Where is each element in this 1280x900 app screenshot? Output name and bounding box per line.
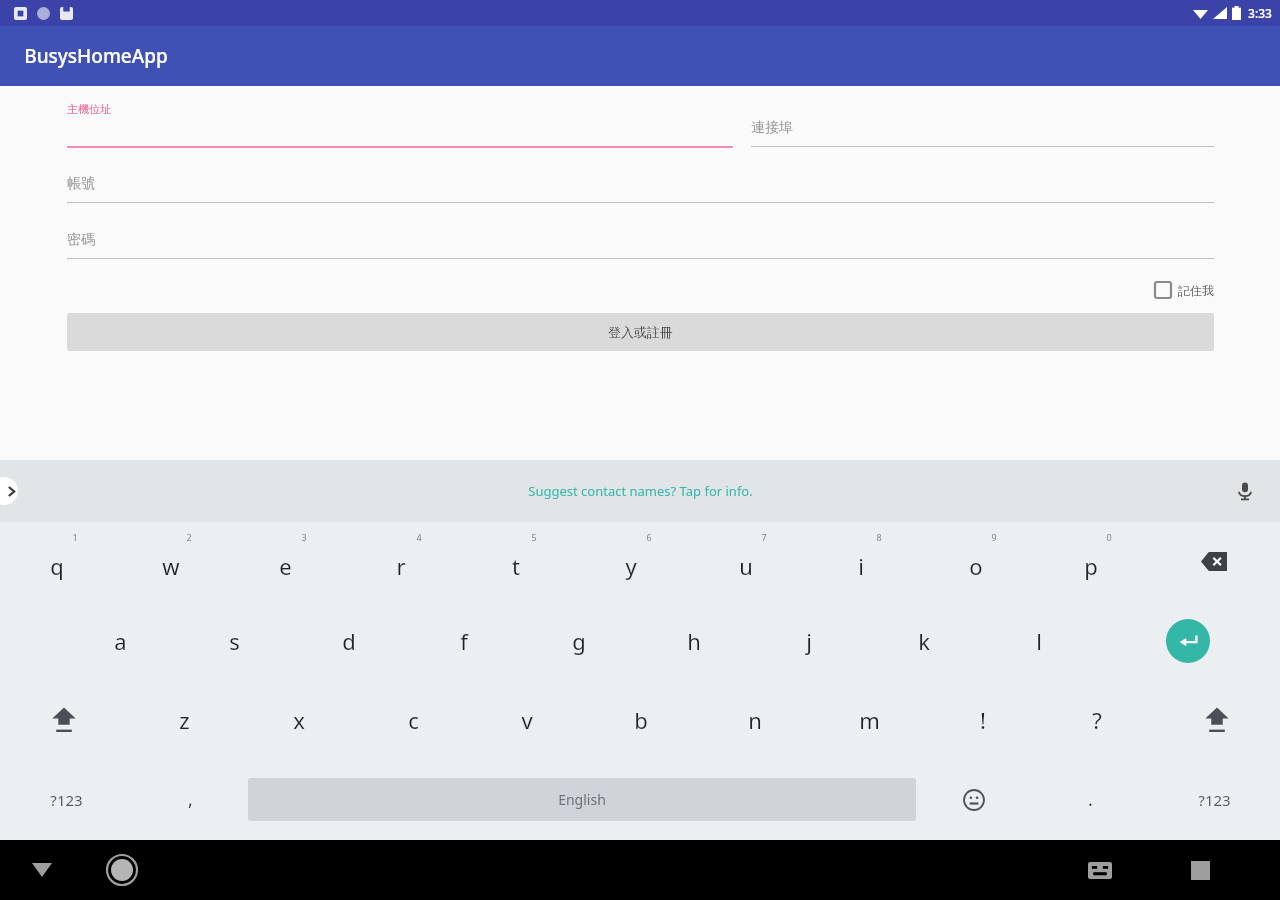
staticText: 5 xyxy=(531,531,537,543)
button[interactable]: j xyxy=(751,601,866,680)
staticText: 6 xyxy=(646,531,652,543)
staticText: v xyxy=(521,705,533,735)
staticText: u xyxy=(739,551,753,581)
staticText: a xyxy=(114,626,127,656)
staticText: x xyxy=(293,705,305,735)
button[interactable]: l xyxy=(981,601,1096,680)
staticText: f xyxy=(460,626,468,656)
button[interactable]: h xyxy=(636,601,751,680)
staticText: ?123 xyxy=(50,790,83,810)
staticText: m xyxy=(859,705,880,735)
staticText: 3:33 xyxy=(1248,5,1272,21)
button[interactable]: z xyxy=(127,680,242,759)
button[interactable]: e xyxy=(228,522,343,601)
button[interactable]: Expand suggestions xyxy=(0,477,18,505)
button[interactable]: 記住我 xyxy=(1155,282,1214,298)
staticText: j xyxy=(806,626,812,656)
staticText: 連接埠 xyxy=(751,119,793,137)
staticText: g xyxy=(572,626,586,656)
button[interactable]: c xyxy=(356,680,470,759)
staticText: l xyxy=(1036,626,1042,656)
button[interactable]: u xyxy=(688,522,803,601)
staticText: k xyxy=(918,626,930,656)
button[interactable]: English xyxy=(248,778,916,821)
button[interactable]: Emoji xyxy=(916,759,1032,840)
staticText: English xyxy=(558,790,606,809)
staticText: 9 xyxy=(991,531,997,543)
staticText: 2 xyxy=(186,531,192,543)
staticText: 8 xyxy=(876,531,882,543)
button[interactable]: Switch keyboard xyxy=(1080,850,1120,890)
button[interactable]: 登入或註冊 xyxy=(67,313,1214,351)
staticText: ?123 xyxy=(1198,790,1231,810)
button[interactable]: s xyxy=(177,601,291,680)
button[interactable]: Shift xyxy=(0,680,127,759)
staticText: , xyxy=(188,787,193,812)
button[interactable]: 密碼 xyxy=(67,231,1214,259)
button[interactable]: ! xyxy=(926,680,1040,759)
button[interactable]: f xyxy=(406,601,521,680)
button[interactable]: b xyxy=(584,680,698,759)
staticText: c xyxy=(408,705,419,735)
button[interactable]: . xyxy=(1032,759,1148,840)
button[interactable]: w xyxy=(114,522,228,601)
button[interactable]: m xyxy=(812,680,926,759)
button[interactable]: x xyxy=(242,680,356,759)
button[interactable]: , xyxy=(132,759,248,840)
staticText: ? xyxy=(1092,705,1102,735)
staticText: p xyxy=(1084,551,1098,581)
staticText: b xyxy=(634,705,648,735)
button[interactable]: q xyxy=(0,522,114,601)
staticText: 3 xyxy=(301,531,307,543)
button[interactable]: p xyxy=(1033,522,1148,601)
staticText: 密碼 xyxy=(67,231,95,249)
button[interactable]: Shift xyxy=(1154,680,1280,759)
button[interactable]: Enter xyxy=(1096,601,1280,680)
staticText: q xyxy=(50,551,64,581)
button[interactable]: k xyxy=(866,601,981,680)
button[interactable]: Suggest contact names? Tap for info. xyxy=(528,482,753,500)
button[interactable]: Home xyxy=(100,848,144,892)
staticText: 登入或註冊 xyxy=(608,324,673,340)
staticText: 1 xyxy=(72,531,78,543)
staticText: ! xyxy=(980,705,986,735)
button[interactable]: a xyxy=(63,601,177,680)
button[interactable]: d xyxy=(291,601,406,680)
staticText: t xyxy=(512,551,520,581)
staticText: BusysHomeApp xyxy=(24,43,168,69)
button[interactable]: ?123 xyxy=(0,759,132,840)
button[interactable]: y xyxy=(573,522,688,601)
button[interactable]: ?123 xyxy=(1148,759,1280,840)
button[interactable]: n xyxy=(698,680,812,759)
staticText: n xyxy=(748,705,762,735)
staticText: w xyxy=(162,551,180,581)
button[interactable]: Hide keyboard xyxy=(22,850,62,890)
button[interactable]: Voice input xyxy=(1232,478,1258,504)
staticText: 0 xyxy=(1106,531,1112,543)
button[interactable]: g xyxy=(521,601,636,680)
button[interactable]: Recents xyxy=(1180,850,1220,890)
button[interactable]: t xyxy=(458,522,573,601)
staticText: 4 xyxy=(416,531,422,543)
staticText: Suggest contact names? Tap for info. xyxy=(528,482,753,500)
staticText: 7 xyxy=(761,531,767,543)
staticText: e xyxy=(279,551,292,581)
button[interactable]: i xyxy=(803,522,918,601)
staticText: . xyxy=(1088,787,1093,812)
staticText: s xyxy=(229,626,240,656)
button[interactable]: ? xyxy=(1040,680,1154,759)
staticText: 帳號 xyxy=(67,175,95,193)
button[interactable]: o xyxy=(918,522,1033,601)
staticText: 主機位址 xyxy=(67,102,111,116)
button[interactable]: v xyxy=(470,680,584,759)
staticText: 記住我 xyxy=(1178,283,1214,298)
button[interactable]: Backspace xyxy=(1148,522,1280,601)
staticText: d xyxy=(342,626,356,656)
staticText: z xyxy=(179,705,190,735)
button[interactable]: 帳號 xyxy=(67,175,1214,203)
button[interactable]: r xyxy=(343,522,458,601)
staticText: y xyxy=(625,551,637,581)
staticText: o xyxy=(969,551,983,581)
